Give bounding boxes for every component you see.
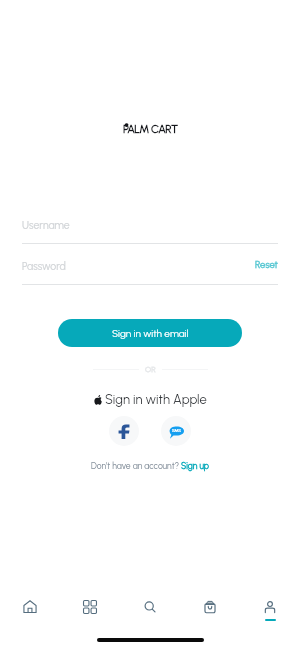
staticText: Don't have an account? Sign up — [91, 461, 210, 471]
button[interactable]: Reset — [255, 259, 278, 270]
button[interactable]: Shopping bag — [180, 596, 240, 630]
staticText: Username — [22, 219, 70, 232]
button[interactable]: Don't have an account? Sign up — [91, 461, 210, 471]
staticText: PALM CART — [123, 122, 178, 136]
staticText: Sign in with Apple — [105, 392, 207, 408]
button[interactable]: Search — [120, 596, 180, 630]
button[interactable]: Username — [22, 214, 278, 244]
staticText: Sign in with email — [112, 327, 189, 339]
button[interactable]: Home — [0, 596, 60, 630]
button[interactable]: Sign in with Apple — [94, 392, 207, 408]
staticText: OR — [145, 364, 156, 374]
button[interactable]: Profile — [240, 596, 300, 630]
button[interactable]: Sign in with email — [58, 319, 242, 347]
staticText: SMS — [172, 428, 181, 433]
button[interactable]: Password — [22, 260, 66, 273]
staticText: Reset — [255, 259, 278, 270]
button[interactable]: Sign in with Facebook — [109, 416, 139, 446]
button[interactable]: Categories — [60, 596, 120, 630]
button[interactable]: Sign in with SMS — [161, 416, 191, 446]
